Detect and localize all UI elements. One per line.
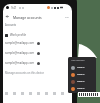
button[interactable]: Setting: [71, 71, 96, 78]
staticText: Accounts: [5, 23, 17, 27]
button[interactable]: Action 5: [42, 89, 50, 97]
button[interactable]: Back: [3, 12, 12, 21]
button[interactable]: Action 4: [34, 89, 42, 97]
button[interactable]: Setting: [71, 85, 96, 92]
staticText: Your settings: [71, 59, 85, 62]
staticText: sample@mailapp.com: [5, 51, 35, 55]
button[interactable]: Action 1: [10, 89, 18, 97]
button[interactable]: Work profile: [0, 31, 69, 39]
button[interactable]: Action 6: [50, 89, 58, 97]
button[interactable]: Action 2: [18, 89, 26, 97]
button[interactable]: Action 3: [26, 89, 34, 97]
button[interactable]: sample@mailapp.com: [0, 39, 69, 47]
button[interactable]: Action 0: [2, 89, 10, 97]
staticText: sample@mailapp.com: [5, 61, 35, 65]
staticText: Setting: [77, 73, 85, 76]
staticText: Setting: [77, 66, 85, 69]
button[interactable]: sample@mailapp.com: [0, 59, 69, 67]
staticText: Manage accounts on this device: [5, 71, 44, 75]
button[interactable]: Manage accounts on this device: [0, 69, 69, 77]
button[interactable]: edit: [65, 16, 69, 19]
button[interactable]: Action 7: [58, 89, 66, 97]
staticText: sample@mailapp.com: [5, 41, 35, 45]
button[interactable]: Setting: [71, 64, 96, 71]
staticText: 9:41: [11, 6, 17, 10]
button[interactable]: sample@mailapp.com: [0, 49, 69, 57]
staticText: Setting: [77, 80, 85, 83]
staticText: Work profile: [10, 33, 27, 37]
button[interactable]: Setting: [71, 78, 96, 85]
button[interactable]: Manage accounts: [13, 15, 42, 20]
staticText: Setting: [77, 87, 85, 90]
